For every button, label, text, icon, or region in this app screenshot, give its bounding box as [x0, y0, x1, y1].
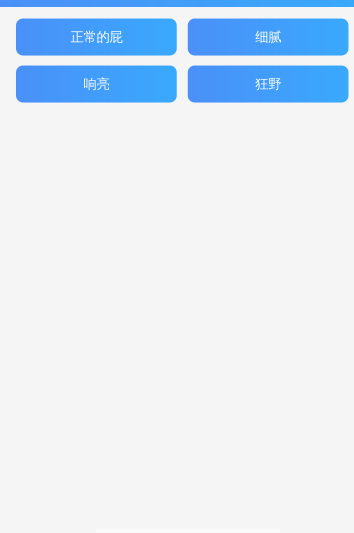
button[interactable]: 狂野 — [188, 65, 349, 102]
button[interactable]: 正常的屁 — [16, 18, 177, 55]
staticText: 响亮 — [83, 76, 109, 92]
button[interactable]: 响亮 — [16, 65, 177, 102]
staticText: 狂野 — [255, 76, 281, 92]
staticText: 细腻 — [255, 29, 281, 45]
staticText: 正常的屁 — [70, 29, 122, 45]
button[interactable]: 细腻 — [188, 18, 349, 55]
